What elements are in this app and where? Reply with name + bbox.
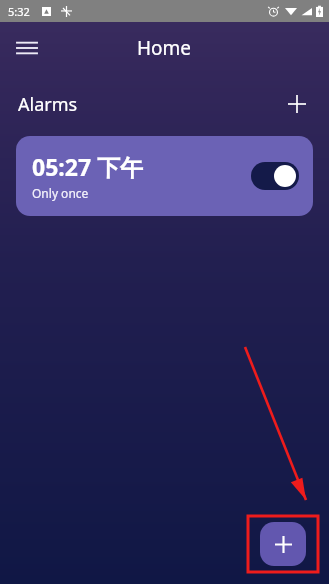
staticText: Only once xyxy=(32,185,89,201)
button[interactable]: 05:27 下午 xyxy=(16,136,313,216)
staticText: 05:27 下午 xyxy=(32,151,144,182)
staticText: Home xyxy=(137,35,192,61)
button[interactable]: Alarm enabled toggle xyxy=(251,162,299,190)
button[interactable]: Add alarm xyxy=(260,522,306,566)
staticText: Alarms xyxy=(18,92,78,117)
staticText: 5:32 xyxy=(8,4,30,19)
button[interactable]: Open navigation menu xyxy=(8,29,46,67)
button[interactable]: Add alarm xyxy=(279,86,315,122)
